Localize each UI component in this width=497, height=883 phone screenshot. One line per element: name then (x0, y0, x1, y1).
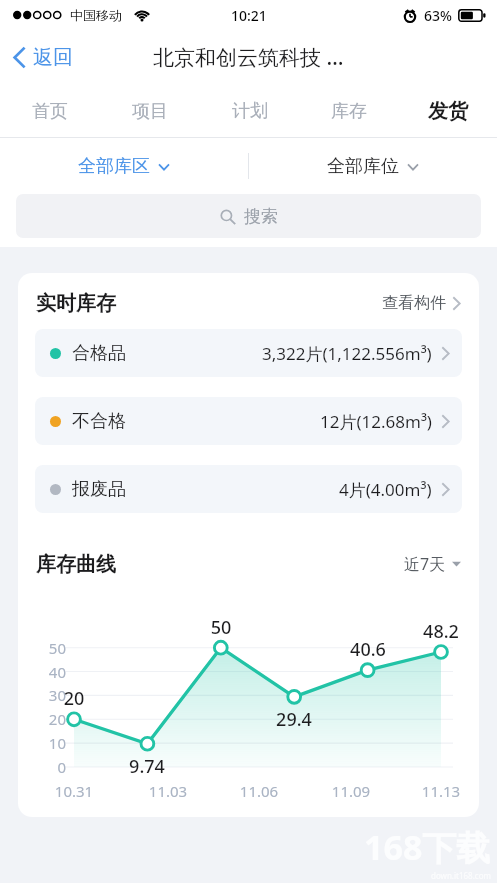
button[interactable]: 查看构件 (378, 289, 465, 317)
button[interactable]: 全部库区 (0, 138, 248, 194)
staticText: 29.4 (254, 707, 334, 732)
staticText: 50 (181, 615, 261, 640)
staticText: 合格品 (72, 342, 126, 365)
staticText: 9.74 (107, 754, 187, 779)
staticText: 全部库位 (327, 155, 399, 178)
staticText: 40 (22, 662, 66, 682)
staticText: 63% (424, 6, 452, 25)
staticText: 10 (22, 733, 66, 753)
staticText: 不合格 (72, 410, 126, 433)
staticText: 发货 (428, 99, 468, 124)
staticText: 库存曲线 (36, 552, 116, 577)
button[interactable]: 合格品 (35, 329, 462, 377)
staticText: 搜索 (244, 206, 278, 227)
staticText: 20 (34, 686, 114, 711)
staticText: 50 (22, 638, 66, 658)
button[interactable]: 项目 (100, 85, 200, 137)
staticText: 查看构件 (382, 293, 446, 313)
button[interactable]: 首页 (0, 85, 100, 137)
button[interactable]: 发货 (398, 85, 497, 137)
staticText: 中国移动 (70, 7, 122, 23)
button[interactable]: 计划 (200, 85, 299, 137)
staticText: 168下载 (364, 824, 491, 870)
staticText: 近7天 (404, 553, 446, 575)
button[interactable]: 库存 (299, 85, 398, 137)
staticText: 10.31 (34, 781, 114, 801)
staticText: 报废品 (72, 478, 126, 501)
staticText: 实时库存 (36, 291, 116, 316)
staticText: 11.03 (128, 781, 208, 801)
staticText: 48.2 (401, 619, 479, 644)
staticText: 计划 (232, 100, 268, 123)
staticText: 20 (22, 709, 66, 729)
staticText: 首页 (32, 100, 68, 123)
staticText: 返回 (33, 45, 73, 70)
staticText: 11.13 (401, 781, 479, 801)
staticText: 11.09 (311, 781, 391, 801)
staticText: 4片(4.00m³) (339, 478, 432, 501)
button[interactable]: 全部库位 (249, 138, 497, 194)
staticText: 30 (22, 685, 66, 705)
staticText: 0 (22, 757, 66, 777)
staticText: 全部库区 (78, 155, 150, 178)
staticText: 库存 (331, 100, 367, 123)
staticText: 项目 (132, 100, 168, 123)
staticText: down.it168.com (431, 870, 491, 881)
button[interactable]: 搜索 (16, 194, 481, 238)
staticText: 11.06 (219, 781, 299, 801)
staticText: 北京和创云筑科技 … (153, 43, 344, 72)
staticText: 3,322片(1,122.556m³) (262, 342, 432, 365)
button[interactable]: 报废品 (35, 465, 462, 513)
button[interactable]: 返回 (0, 37, 85, 78)
button[interactable]: 不合格 (35, 397, 462, 445)
staticText: 12片(12.68m³) (320, 410, 432, 433)
staticText: 40.6 (328, 637, 408, 662)
staticText: 10:21 (231, 6, 267, 25)
button[interactable]: 近7天 (400, 549, 465, 579)
